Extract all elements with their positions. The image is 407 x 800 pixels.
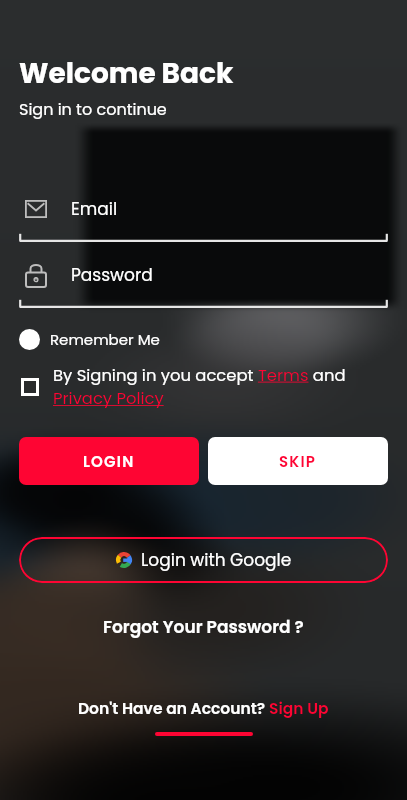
button[interactable]: Forgot Your Password ?: [103, 615, 304, 639]
staticText: Don't Have an Account?: [78, 698, 269, 720]
staticText: Login with Google: [141, 548, 292, 572]
staticText: Remember Me: [50, 329, 160, 350]
button[interactable]: Don't Have an Account?: [78, 698, 329, 720]
staticText: Sign in to continue: [19, 98, 167, 120]
staticText: By Signing in you accept Terms and Priva…: [53, 364, 367, 410]
other: Google: [116, 552, 132, 568]
staticText: Email: [71, 197, 118, 221]
staticText: LOGIN: [83, 451, 135, 472]
staticText: Password: [71, 263, 153, 287]
button[interactable]: Email: [19, 193, 388, 242]
button[interactable]: By Signing in you accept Terms and Priva…: [19, 364, 367, 410]
staticText: SKIP: [279, 451, 317, 472]
staticText: Welcome Back: [19, 54, 234, 93]
button[interactable]: LOGIN: [19, 437, 199, 485]
button[interactable]: Remember Me: [19, 328, 160, 350]
button[interactable]: SKIP: [208, 437, 388, 485]
button[interactable]: Google: [19, 537, 388, 583]
staticText: Sign Up: [269, 698, 329, 720]
button[interactable]: Password: [19, 259, 388, 308]
